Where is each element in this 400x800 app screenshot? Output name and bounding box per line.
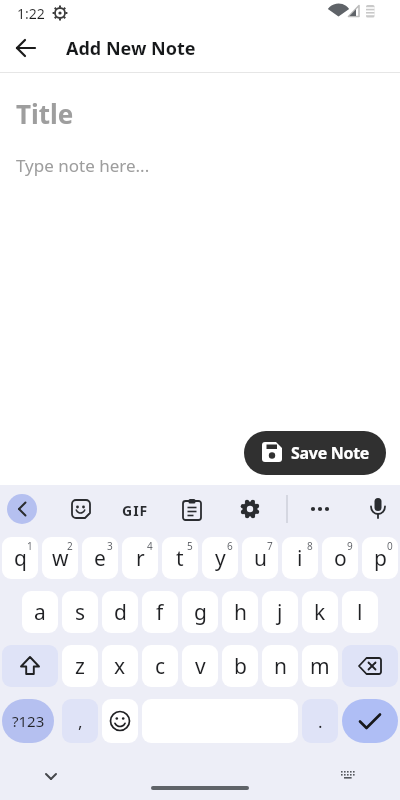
staticText: r [136,544,145,573]
staticText: GIF [122,501,149,520]
staticText: 1 [27,539,33,553]
staticText: t [176,544,184,573]
staticText: p [374,544,387,573]
staticText: ?123 [12,711,45,731]
staticText: 7 [267,539,273,553]
staticText: 6 [227,539,233,553]
staticText: d [114,598,127,627]
staticText: y [215,544,226,573]
staticText: c [155,652,166,681]
staticText: g [194,598,207,627]
staticText: 8 [307,539,313,553]
staticText: z [75,652,85,681]
staticText: 2 [67,539,73,553]
staticText: 1:22 [17,4,45,23]
staticText: , [78,710,83,733]
staticText: i [297,544,303,573]
staticText: e [94,544,106,573]
staticText: w [52,544,69,573]
staticText: Type note here... [16,154,150,177]
staticText: q [14,544,27,573]
staticText: 4 [147,539,153,553]
staticText: Title [16,96,74,131]
staticText: x [114,652,126,681]
staticText: 9 [347,539,353,553]
staticText: 3 [107,539,113,553]
staticText: Add New Note [66,36,196,61]
staticText: h [234,598,247,627]
staticText: u [254,544,267,573]
staticText: j [277,598,283,627]
staticText: 0 [387,539,393,553]
staticText: 5 [187,539,193,553]
staticText: v [195,652,206,681]
staticText: f [156,598,164,627]
staticText: o [334,544,347,573]
staticText: Save Note [291,442,370,464]
staticText: l [357,598,363,627]
staticText: n [274,652,287,681]
staticText: . [318,710,323,733]
staticText: b [234,652,247,681]
staticText: k [314,598,326,627]
staticText: s [75,598,86,627]
staticText: a [34,598,46,627]
staticText: m [310,652,330,681]
